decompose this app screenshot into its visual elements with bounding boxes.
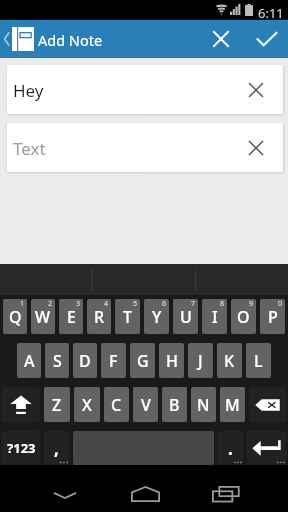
button[interactable]: V xyxy=(133,387,158,422)
staticText: N xyxy=(197,394,210,416)
button[interactable]: P xyxy=(260,299,285,334)
staticText: Y xyxy=(152,306,162,328)
button[interactable]: Home xyxy=(125,465,165,512)
staticText: J xyxy=(198,350,203,372)
staticText: H xyxy=(166,350,178,372)
button[interactable]: A xyxy=(17,343,41,378)
button[interactable]: W xyxy=(31,299,55,334)
button[interactable]: Clear xyxy=(243,135,269,161)
staticText: 9 xyxy=(249,299,254,309)
staticText: C xyxy=(111,394,122,416)
staticText: . xyxy=(228,437,233,460)
staticText: 2 xyxy=(48,299,53,309)
button[interactable]: O xyxy=(231,299,256,334)
button[interactable]: H xyxy=(159,343,184,378)
staticText: Hey xyxy=(13,79,44,102)
button[interactable]: N xyxy=(191,387,216,422)
button[interactable]: Y xyxy=(144,299,169,334)
button[interactable]: E xyxy=(59,299,83,334)
staticText: 3 xyxy=(76,299,81,309)
button[interactable]: G xyxy=(130,343,155,378)
button[interactable]: J xyxy=(188,343,213,378)
staticText: Z xyxy=(52,394,62,416)
staticText: Text xyxy=(13,137,46,160)
button[interactable]: U xyxy=(173,299,198,334)
button[interactable]: Enter xyxy=(247,431,286,465)
button[interactable]: I xyxy=(202,299,227,334)
staticText: M xyxy=(225,394,240,416)
button[interactable]: S xyxy=(45,343,69,378)
staticText: A xyxy=(24,350,35,372)
button[interactable]: X xyxy=(74,387,100,422)
staticText: B xyxy=(169,394,180,416)
staticText: G xyxy=(137,350,149,372)
button[interactable]: Text xyxy=(7,123,283,172)
button[interactable]: C xyxy=(104,387,129,422)
button[interactable]: M xyxy=(220,387,245,422)
staticText: Add Note xyxy=(38,30,103,50)
staticText: ?123 xyxy=(7,439,36,457)
staticText: F xyxy=(109,350,118,372)
staticText: 4 xyxy=(104,299,109,309)
button[interactable]: D xyxy=(73,343,97,378)
button[interactable]: ?123 xyxy=(2,431,40,465)
staticText: U xyxy=(180,306,192,328)
button[interactable]: Save xyxy=(246,20,288,58)
button[interactable]: Discard xyxy=(200,20,241,58)
staticText: 0 xyxy=(278,299,283,309)
staticText: K xyxy=(224,350,235,372)
staticText: O xyxy=(237,306,250,328)
staticText: L xyxy=(254,350,263,372)
staticText: Q xyxy=(9,306,22,328)
staticText: X xyxy=(82,394,92,416)
button[interactable]: Clear xyxy=(243,77,269,103)
staticText: W xyxy=(35,306,51,328)
staticText: V xyxy=(141,394,151,416)
button[interactable]: L xyxy=(246,343,271,378)
staticText: I xyxy=(212,306,218,328)
staticText: T xyxy=(123,306,132,328)
button[interactable]: Recents xyxy=(205,465,245,512)
staticText: , xyxy=(54,437,59,460)
button[interactable]: Q xyxy=(3,299,27,334)
button[interactable]: Shift xyxy=(2,387,40,422)
button[interactable]: Backspace xyxy=(249,387,286,422)
button[interactable]: Z xyxy=(44,387,70,422)
button[interactable]: T xyxy=(115,299,140,334)
button[interactable]: B xyxy=(162,387,187,422)
button[interactable]: R xyxy=(87,299,111,334)
staticText: 8 xyxy=(220,299,225,309)
staticText: 6:11 xyxy=(258,4,284,22)
button[interactable]: F xyxy=(101,343,126,378)
button[interactable]: Comma xyxy=(44,431,69,465)
staticText: P xyxy=(268,306,278,328)
button[interactable]: Navigate up xyxy=(0,20,36,58)
staticText: 5 xyxy=(133,299,138,309)
staticText: E xyxy=(67,306,76,328)
staticText: D xyxy=(79,350,91,372)
staticText: S xyxy=(53,350,62,372)
button[interactable]: Hide keyboard xyxy=(45,465,85,512)
button[interactable]: Period xyxy=(218,431,243,465)
staticText: 1 xyxy=(20,299,25,309)
button[interactable]: Hey xyxy=(7,65,283,114)
staticText: 7 xyxy=(191,299,196,309)
staticText: 6 xyxy=(162,299,167,309)
staticText: R xyxy=(94,306,105,328)
button[interactable]: K xyxy=(217,343,242,378)
